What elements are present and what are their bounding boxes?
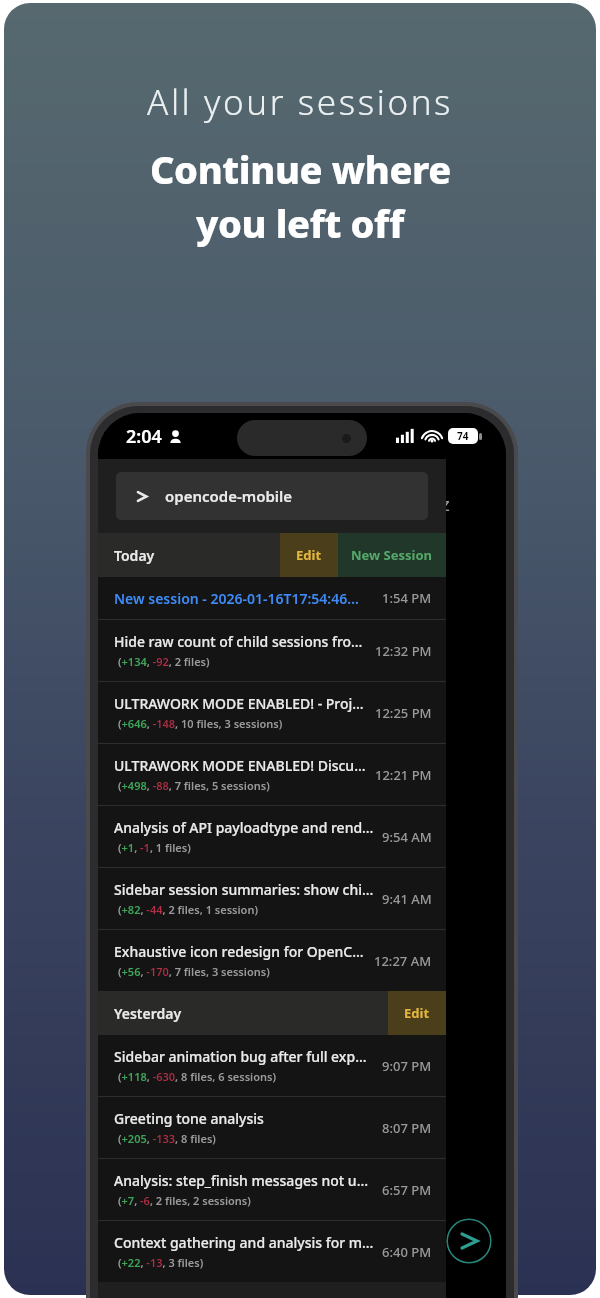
button[interactable]: ULTRAWORK MODE ENABLED! Discus…: [98, 744, 446, 805]
staticText: Exhaustive icon redesign for OpenCo…: [114, 942, 366, 961]
staticText: Hide raw count of child sessions from…: [114, 632, 367, 651]
staticText: Analysis of API payloadtype and rende…: [114, 818, 374, 837]
button[interactable]: New session - 2026-01-16T17:54:46…: [98, 577, 446, 619]
staticText: New Session: [351, 546, 433, 564]
staticText: 12:21 PM: [375, 766, 432, 784]
staticText: (+205, -133, 8 files): [118, 1131, 216, 1146]
button[interactable]: Analysis of API payloadtype and rende…: [98, 806, 446, 867]
staticText: (+56, -170, 7 files, 3 sessions): [118, 964, 270, 979]
staticText: Greeting tone analysis: [114, 1109, 264, 1128]
staticText: Analysis: step_finish messages not up…: [114, 1171, 374, 1190]
staticText: 9:41 AM: [382, 890, 432, 908]
staticText: Edit: [296, 546, 322, 564]
staticText: Context gathering and analysis for mul…: [114, 1233, 374, 1252]
staticText: 12:25 PM: [375, 704, 432, 722]
button[interactable]: Greeting tone analysis: [98, 1097, 446, 1158]
staticText: 1:54 PM: [382, 589, 432, 607]
button[interactable]: Sidebar animation bug after full expan…: [98, 1035, 446, 1096]
staticText: (+22, -13, 3 files): [118, 1255, 204, 1270]
staticText: 8:07 PM: [382, 1119, 432, 1137]
staticText: 12:32 PM: [375, 642, 432, 660]
staticText: Sidebar session summaries: show chil…: [114, 880, 374, 899]
button[interactable]: ULTRAWORK MODE ENABLED! - Proj…: [98, 682, 446, 743]
button[interactable]: Hide raw count of child sessions from…: [98, 620, 446, 681]
button[interactable]: Context gathering and analysis for mul…: [98, 1221, 446, 1282]
button[interactable]: Edit: [280, 533, 338, 577]
staticText: 74: [457, 429, 469, 443]
staticText: (+1, -1, 1 files): [118, 840, 191, 855]
staticText: ULTRAWORK MODE ENABLED! Discus…: [114, 756, 367, 775]
staticText: All your sessions: [147, 78, 454, 126]
staticText: (+82, -44, 2 files, 1 session): [118, 902, 258, 917]
staticText: 12:27 AM: [374, 952, 432, 970]
staticText: 2:04: [126, 424, 162, 449]
staticText: opencode-mobile: [165, 486, 293, 506]
staticText: (+134, -92, 2 files): [118, 654, 210, 669]
staticText: 6:40 PM: [382, 1243, 432, 1261]
staticText: ULTRAWORK MODE ENABLED! - Proj…: [114, 694, 364, 713]
staticText: 6:57 PM: [382, 1181, 432, 1199]
staticText: you left off: [196, 197, 404, 249]
staticText: 9:54 AM: [382, 828, 432, 846]
button[interactable]: New Session: [338, 533, 446, 577]
button[interactable]: Analysis: step_finish messages not up…: [98, 1159, 446, 1220]
button[interactable]: opencode-mobile: [116, 472, 428, 520]
button[interactable]: Edit: [388, 991, 446, 1035]
staticText: (+498, -88, 7 files, 5 sessions): [118, 778, 270, 793]
staticText: New session - 2026-01-16T17:54:46…: [114, 589, 359, 608]
staticText: Edit: [404, 1004, 430, 1022]
staticText: 9:07 PM: [382, 1057, 432, 1075]
staticText: 46.816Z: [394, 495, 450, 515]
staticText: (+646, -148, 10 files, 3 sessions): [118, 716, 283, 731]
staticText: Continue where: [150, 143, 451, 195]
staticText: (+7, -6, 2 files, 2 sessions): [118, 1193, 251, 1208]
button[interactable]: Sidebar session summaries: show chil…: [98, 868, 446, 929]
staticText: Today: [114, 546, 280, 565]
staticText: Sidebar animation bug after full expan…: [114, 1047, 374, 1066]
staticText: Yesterday: [114, 1004, 388, 1023]
button[interactable]: Exhaustive icon redesign for OpenCo…: [98, 930, 446, 991]
staticText: (+118, -630, 8 files, 6 sessions): [118, 1069, 276, 1084]
button[interactable]: Send: [446, 1218, 492, 1264]
